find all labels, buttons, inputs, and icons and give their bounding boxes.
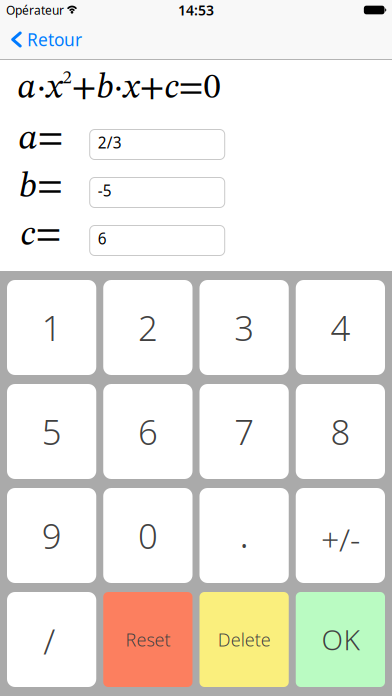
button[interactable]: Reset bbox=[103, 592, 192, 687]
staticText: 8 bbox=[330, 408, 350, 455]
button[interactable]: 3 bbox=[199, 280, 289, 375]
staticText: 14:53 bbox=[178, 0, 214, 20]
button[interactable]: . bbox=[199, 488, 289, 583]
staticText: 3 bbox=[234, 304, 254, 351]
staticText: b= bbox=[19, 170, 63, 205]
button[interactable]: 8 bbox=[296, 384, 385, 479]
button[interactable]: 1 bbox=[7, 280, 96, 375]
button[interactable]: 4 bbox=[296, 280, 385, 375]
staticText: a= bbox=[18, 122, 63, 157]
staticText: 6 bbox=[98, 228, 107, 249]
button[interactable]: 7 bbox=[199, 384, 289, 479]
button[interactable]: 0 bbox=[103, 488, 192, 583]
button[interactable]: 6 bbox=[103, 384, 192, 479]
button[interactable]: 2/3 bbox=[90, 129, 225, 159]
staticText: a·x2+b·x+c=0 bbox=[17, 69, 220, 106]
staticText: 6 bbox=[138, 408, 158, 455]
button[interactable]: 2 bbox=[103, 280, 192, 375]
button[interactable]: 9 bbox=[7, 488, 96, 583]
button[interactable]: 6 bbox=[90, 225, 225, 255]
button[interactable]: Delete bbox=[199, 592, 289, 687]
button[interactable]: OK bbox=[296, 592, 385, 687]
staticText: Reset bbox=[125, 627, 170, 652]
staticText: Retour bbox=[27, 28, 82, 51]
staticText: -5 bbox=[98, 180, 112, 201]
staticText: OK bbox=[321, 620, 359, 658]
staticText: 0 bbox=[138, 512, 158, 559]
staticText: . bbox=[239, 505, 249, 560]
staticText: 9 bbox=[42, 512, 62, 559]
staticText: Delete bbox=[218, 627, 271, 652]
staticText: 7 bbox=[234, 408, 254, 455]
button[interactable]: / bbox=[7, 592, 96, 687]
staticText: 5 bbox=[42, 408, 62, 455]
staticText: Opérateur bbox=[6, 2, 64, 18]
button[interactable]: -5 bbox=[90, 177, 225, 207]
staticText: / bbox=[43, 617, 55, 665]
button[interactable]: 5 bbox=[7, 384, 96, 479]
staticText: 4 bbox=[330, 304, 350, 351]
button[interactable]: +/- bbox=[296, 488, 385, 583]
staticText: 1 bbox=[42, 304, 62, 351]
staticText: +/- bbox=[321, 517, 360, 561]
staticText: 2 bbox=[138, 304, 158, 351]
staticText: 2/3 bbox=[98, 132, 122, 153]
button[interactable]: Retour bbox=[0, 28, 82, 51]
staticText: c= bbox=[20, 218, 61, 253]
